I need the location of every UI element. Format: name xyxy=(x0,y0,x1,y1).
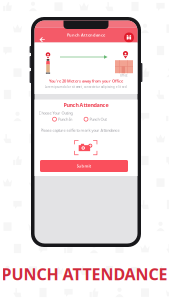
staticText: Office xyxy=(120,74,128,77)
staticText: Lorem ipsum dolor sit amet, consectetur … xyxy=(45,85,127,89)
button[interactable]: Punch Out xyxy=(84,117,106,122)
staticText: Punch Attendance xyxy=(63,101,108,108)
staticText: You're 20 Meters away from your Office xyxy=(49,78,123,84)
button[interactable]: Punch In xyxy=(52,117,72,122)
button[interactable]: Alerts xyxy=(123,27,134,42)
staticText: Punch Out xyxy=(89,116,106,122)
button[interactable]: Submit xyxy=(40,160,128,172)
button[interactable]: Back xyxy=(36,27,46,42)
staticText: Please capture selfie to mark your Atten… xyxy=(40,127,119,133)
staticText: Punch Attendance xyxy=(67,32,105,38)
staticText: Choose Your Outing xyxy=(39,110,73,116)
staticText: PUNCH ATTENDANCE xyxy=(1,263,167,285)
staticText: Punch In xyxy=(58,116,72,122)
staticText: Submit xyxy=(76,163,91,169)
